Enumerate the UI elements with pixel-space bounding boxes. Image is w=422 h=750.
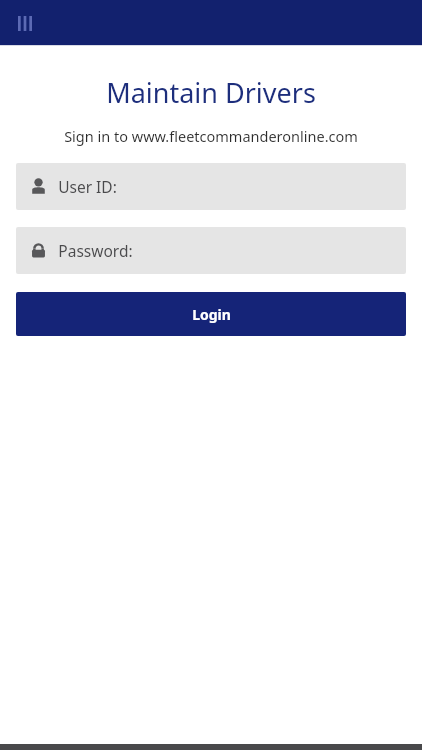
staticText: Maintain Drivers [106, 74, 316, 111]
staticText: Login [192, 305, 231, 324]
button[interactable]: Menu [8, 6, 42, 40]
staticText: Sign in to www.fleetcommanderonline.com [64, 126, 358, 146]
staticText: Password: [58, 240, 133, 261]
staticText: User ID: [58, 176, 117, 197]
button[interactable]: Login [16, 292, 406, 336]
button[interactable]: User ID: [16, 163, 406, 210]
button[interactable]: Password: [16, 227, 406, 274]
